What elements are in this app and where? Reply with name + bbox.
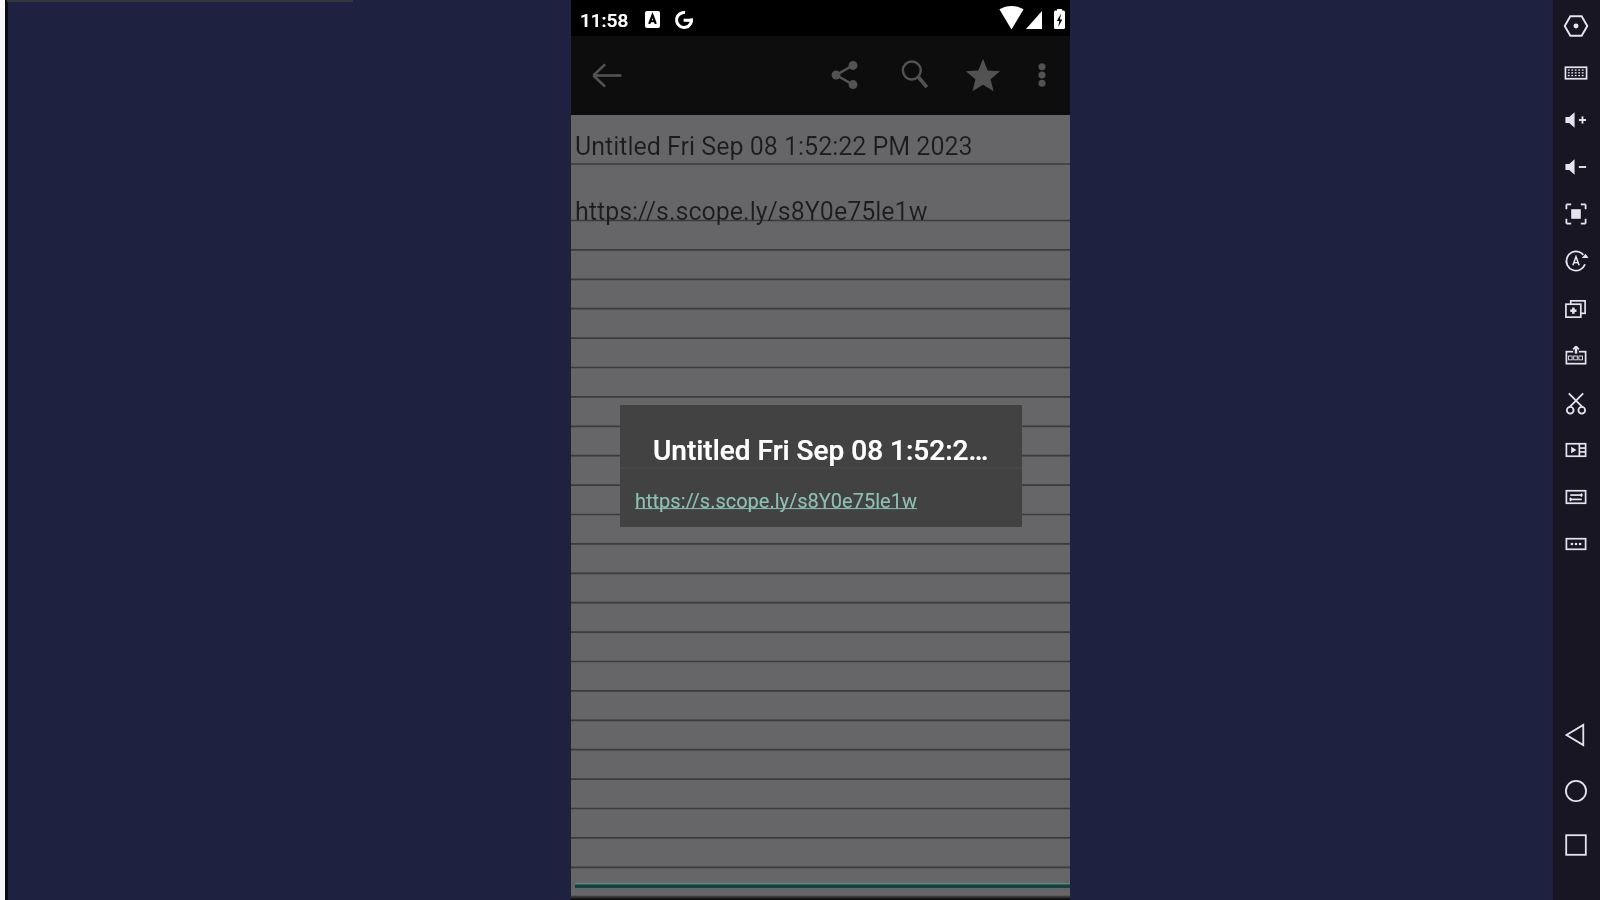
button[interactable]: Power [1564,14,1588,38]
button[interactable]: Volume up [1564,108,1588,132]
button[interactable]: Favourite [957,49,1009,101]
button[interactable]: Keyboard [1564,61,1588,85]
staticText: 11:58 [580,9,629,31]
button[interactable]: Navigate up [581,49,633,101]
staticText: https://s.scope.ly/s8Y0e75le1w [575,197,928,226]
button[interactable]: Fullscreen [1564,202,1588,226]
button[interactable]: Recent apps [1562,831,1590,859]
button[interactable]: More options [1016,49,1068,101]
button[interactable]: Untitled Fri Sep 08 1:52:2… [620,405,1022,468]
button[interactable]: Home [1562,777,1590,805]
staticText: https://s.scope.ly/s8Y0e75le1w [635,489,917,512]
button[interactable]: Volume down [1564,155,1588,179]
button[interactable]: Back [1562,721,1590,749]
button[interactable]: Snapshot [1564,297,1588,321]
button[interactable]: Screenshot [1564,391,1588,415]
button[interactable]: Record screen [1564,438,1588,462]
button[interactable]: Note text [571,0,1070,900]
button[interactable]: Install APK [1564,344,1588,368]
staticText: Untitled Fri Sep 08 1:52:2… [653,434,989,467]
button[interactable]: Share [819,49,871,101]
button[interactable]: https://s.scope.ly/s8Y0e75le1w [620,469,1022,527]
button[interactable]: More [1564,532,1588,556]
button[interactable]: Rotate [1564,249,1588,273]
button[interactable]: Resize [1564,485,1588,509]
button[interactable]: Search [889,49,941,101]
staticText: Untitled Fri Sep 08 1:52:22 PM 2023 [575,132,973,161]
